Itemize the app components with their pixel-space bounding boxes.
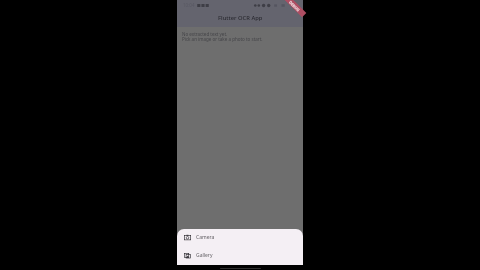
staticText: No extracted text yet. [182,31,228,37]
staticText: Pick an image or take a photo to start. [182,36,263,42]
staticText: Gallery [196,252,213,259]
staticText: Camera [196,234,215,241]
other: Camera [184,234,191,241]
button[interactable]: Gallery [177,246,303,264]
button[interactable]: Camera [177,229,303,246]
other: Gallery [184,252,191,259]
staticText: Flutter OCR App [218,14,263,22]
staticText: DEBUG [288,0,301,13]
